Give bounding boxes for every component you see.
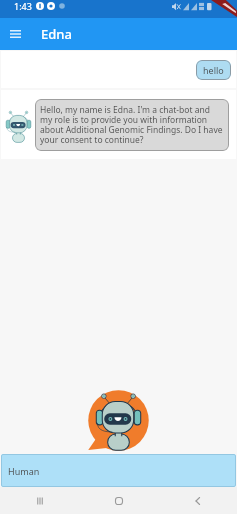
button[interactable]: hello: [1, 51, 236, 88]
button[interactable]: Back: [175, 487, 221, 514]
button[interactable]: Home: [96, 487, 142, 514]
staticText: hello: [203, 64, 224, 76]
button[interactable]: Hello, my name is Edna. I'm a chat-bot a…: [1, 90, 236, 159]
button[interactable]: Open navigation menu: [0, 19, 30, 49]
staticText: Human: [8, 465, 40, 477]
button[interactable]: Human: [1, 454, 236, 487]
staticText: 1:43: [14, 0, 32, 12]
staticText: Hello, my name is Edna. I'm a chat-bot a…: [40, 104, 224, 146]
staticText: Edna: [41, 25, 72, 43]
button[interactable]: Recent apps: [17, 487, 63, 514]
